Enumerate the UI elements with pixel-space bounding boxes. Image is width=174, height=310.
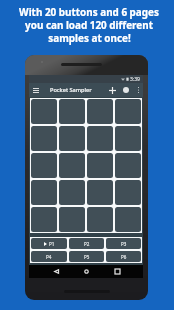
staticText: Pocket Sampler: [50, 86, 92, 94]
staticText: samples at once!: [48, 31, 131, 44]
button[interactable]: Pad 19: [87, 207, 113, 232]
button[interactable]: Pad 20: [115, 207, 141, 232]
button[interactable]: Pad 3: [87, 99, 113, 124]
button[interactable]: Home: [79, 265, 93, 278]
button[interactable]: Pad 11: [87, 153, 113, 178]
button[interactable]: Pad 10: [59, 153, 85, 178]
button[interactable]: Page 5: [69, 251, 104, 262]
button[interactable]: Back: [49, 265, 63, 278]
button[interactable]: Record: [119, 83, 133, 97]
button[interactable]: Pad 18: [59, 207, 85, 232]
button[interactable]: Page 6: [106, 251, 141, 262]
button[interactable]: Recent apps: [110, 265, 124, 278]
button[interactable]: Pad 7: [87, 126, 113, 151]
button[interactable]: Page 4: [31, 251, 67, 262]
button[interactable]: Pad 17: [31, 207, 57, 232]
button[interactable]: Pad 4: [115, 99, 141, 124]
button[interactable]: Pad 1: [31, 99, 57, 124]
staticText: P5: [84, 254, 90, 260]
button[interactable]: Add: [105, 83, 119, 97]
staticText: 3:39: [130, 76, 140, 83]
staticText: P1: [49, 241, 55, 247]
button[interactable]: Page 1: [31, 238, 67, 249]
button[interactable]: Pad 13: [31, 180, 57, 205]
staticText: P6: [121, 254, 127, 260]
staticText: P4: [46, 254, 52, 260]
button[interactable]: Pad 15: [87, 180, 113, 205]
button[interactable]: Pad 12: [115, 153, 141, 178]
button[interactable]: Page 3: [106, 238, 141, 249]
button[interactable]: Page 2: [69, 238, 104, 249]
button[interactable]: Navigation menu: [29, 83, 43, 97]
staticText: P2: [84, 241, 90, 247]
button[interactable]: Pad 5: [31, 126, 57, 151]
button[interactable]: Pad 8: [115, 126, 141, 151]
button[interactable]: More options: [133, 83, 143, 97]
button[interactable]: Pad 9: [31, 153, 57, 178]
staticText: you can load 120 different: [25, 18, 153, 31]
button[interactable]: Pad 16: [115, 180, 141, 205]
button[interactable]: Pad 14: [59, 180, 85, 205]
staticText: With 20 buttons and 6 pages: [19, 5, 159, 18]
button[interactable]: Pad 2: [59, 99, 85, 124]
staticText: P3: [121, 241, 127, 247]
button[interactable]: Pad 6: [59, 126, 85, 151]
